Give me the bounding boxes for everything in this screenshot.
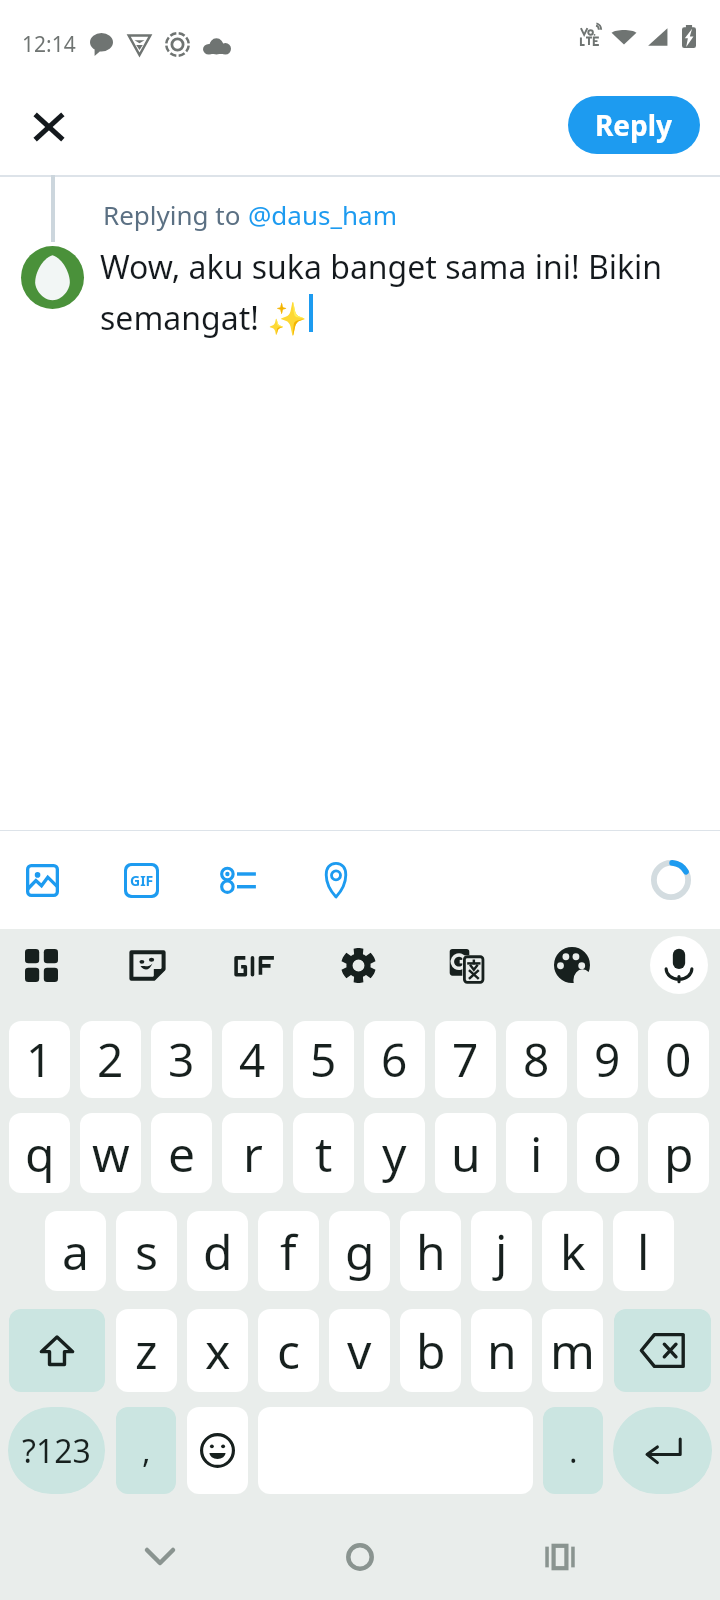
staticText: k	[560, 1219, 586, 1284]
button[interactable]: 8	[506, 1021, 567, 1098]
button[interactable]: Reply	[568, 96, 700, 154]
button[interactable]: 6	[364, 1021, 425, 1098]
staticText: u	[451, 1121, 481, 1186]
button[interactable]: 7	[435, 1021, 496, 1098]
button[interactable]: p	[648, 1113, 709, 1193]
button[interactable]: .	[543, 1407, 603, 1494]
button[interactable]: Emoji	[187, 1407, 248, 1494]
button[interactable]: ,	[116, 1407, 176, 1494]
button[interactable]: w	[80, 1113, 141, 1193]
button[interactable]: g	[329, 1211, 390, 1291]
button[interactable]: Theme	[543, 936, 601, 994]
button[interactable]: Apps	[12, 936, 70, 994]
button[interactable]: o	[577, 1113, 638, 1193]
button[interactable]: i	[506, 1113, 567, 1193]
staticText: s	[135, 1219, 158, 1284]
staticText: c	[277, 1318, 301, 1383]
button[interactable]: Add location	[297, 836, 375, 924]
staticText: p	[664, 1121, 694, 1186]
button[interactable]: Voice input	[650, 936, 708, 994]
staticText: GIF	[130, 871, 154, 890]
staticText: b	[416, 1318, 446, 1383]
button[interactable]: e	[151, 1113, 212, 1193]
button[interactable]: Add poll	[199, 836, 277, 924]
staticText: Reply	[595, 106, 673, 144]
button[interactable]: x	[187, 1309, 248, 1392]
button[interactable]: v	[329, 1309, 390, 1392]
button[interactable]: ?123	[8, 1407, 105, 1494]
button[interactable]: 4	[222, 1021, 283, 1098]
staticText: ,	[142, 1429, 151, 1473]
staticText: g	[345, 1219, 375, 1284]
button[interactable]: 0	[648, 1021, 709, 1098]
staticText: z	[135, 1318, 158, 1383]
button[interactable]: c	[258, 1309, 319, 1392]
staticText: 8	[523, 1028, 550, 1091]
button[interactable]: k	[542, 1211, 603, 1291]
button[interactable]: s	[116, 1211, 177, 1291]
staticText: 12:14	[22, 30, 76, 59]
button[interactable]: Add photo	[3, 836, 81, 924]
staticText: v	[347, 1318, 372, 1383]
button[interactable]: 3	[151, 1021, 212, 1098]
staticText: h	[416, 1219, 446, 1284]
staticText: d	[203, 1219, 233, 1284]
staticText: i	[530, 1121, 543, 1186]
button[interactable]: r	[222, 1113, 283, 1193]
staticText: e	[168, 1121, 196, 1186]
staticText: 4	[239, 1028, 266, 1091]
staticText: 3	[168, 1028, 195, 1091]
button[interactable]: Close	[14, 92, 84, 162]
button[interactable]: Settings	[329, 936, 387, 994]
staticText: 9	[594, 1028, 621, 1091]
button[interactable]: 1	[9, 1021, 70, 1098]
button[interactable]: z	[116, 1309, 177, 1392]
button[interactable]: f	[258, 1211, 319, 1291]
button[interactable]: Recents	[525, 1522, 595, 1592]
button[interactable]: n	[471, 1309, 532, 1392]
button[interactable]: b	[400, 1309, 461, 1392]
button[interactable]: Home	[325, 1522, 395, 1592]
button[interactable]: l	[613, 1211, 674, 1291]
button[interactable]: j	[471, 1211, 532, 1291]
staticText: l	[637, 1219, 650, 1284]
button[interactable]: 9	[577, 1021, 638, 1098]
button[interactable]: a	[45, 1211, 106, 1291]
staticText: 1	[26, 1028, 53, 1091]
staticText: 5	[310, 1028, 337, 1091]
button[interactable]: u	[435, 1113, 496, 1193]
button[interactable]: Back	[125, 1522, 195, 1592]
button[interactable]: Translate	[437, 936, 495, 994]
staticText: m	[550, 1318, 595, 1383]
staticText: q	[25, 1121, 55, 1186]
staticText: w	[92, 1121, 130, 1186]
button[interactable]: y	[364, 1113, 425, 1193]
button[interactable]: d	[187, 1211, 248, 1291]
staticText: 2	[97, 1028, 124, 1091]
staticText: 6	[381, 1028, 408, 1091]
staticText: 7	[452, 1028, 479, 1091]
staticText: r	[243, 1121, 263, 1186]
staticText: .	[569, 1429, 578, 1473]
button[interactable]: h	[400, 1211, 461, 1291]
button[interactable]: Backspace	[614, 1309, 711, 1392]
button[interactable]: Shift	[9, 1309, 105, 1392]
button[interactable]: m	[542, 1309, 603, 1392]
button[interactable]: 2	[80, 1021, 141, 1098]
staticText: f	[280, 1219, 297, 1284]
button[interactable]: Stickers	[118, 936, 176, 994]
button[interactable]: GIF keyboard	[226, 936, 284, 994]
staticText: @daus_ham	[248, 197, 397, 232]
staticText: t	[315, 1121, 333, 1186]
staticText: o	[593, 1121, 623, 1186]
button[interactable]: Enter	[613, 1407, 712, 1494]
button[interactable]: 5	[293, 1021, 354, 1098]
staticText: x	[205, 1318, 231, 1383]
button[interactable]: Add GIF	[102, 836, 180, 924]
staticText: y	[382, 1121, 407, 1186]
button[interactable]: q	[9, 1113, 70, 1193]
button[interactable]: t	[293, 1113, 354, 1193]
staticText: n	[487, 1318, 517, 1383]
staticText: 0	[665, 1028, 692, 1091]
